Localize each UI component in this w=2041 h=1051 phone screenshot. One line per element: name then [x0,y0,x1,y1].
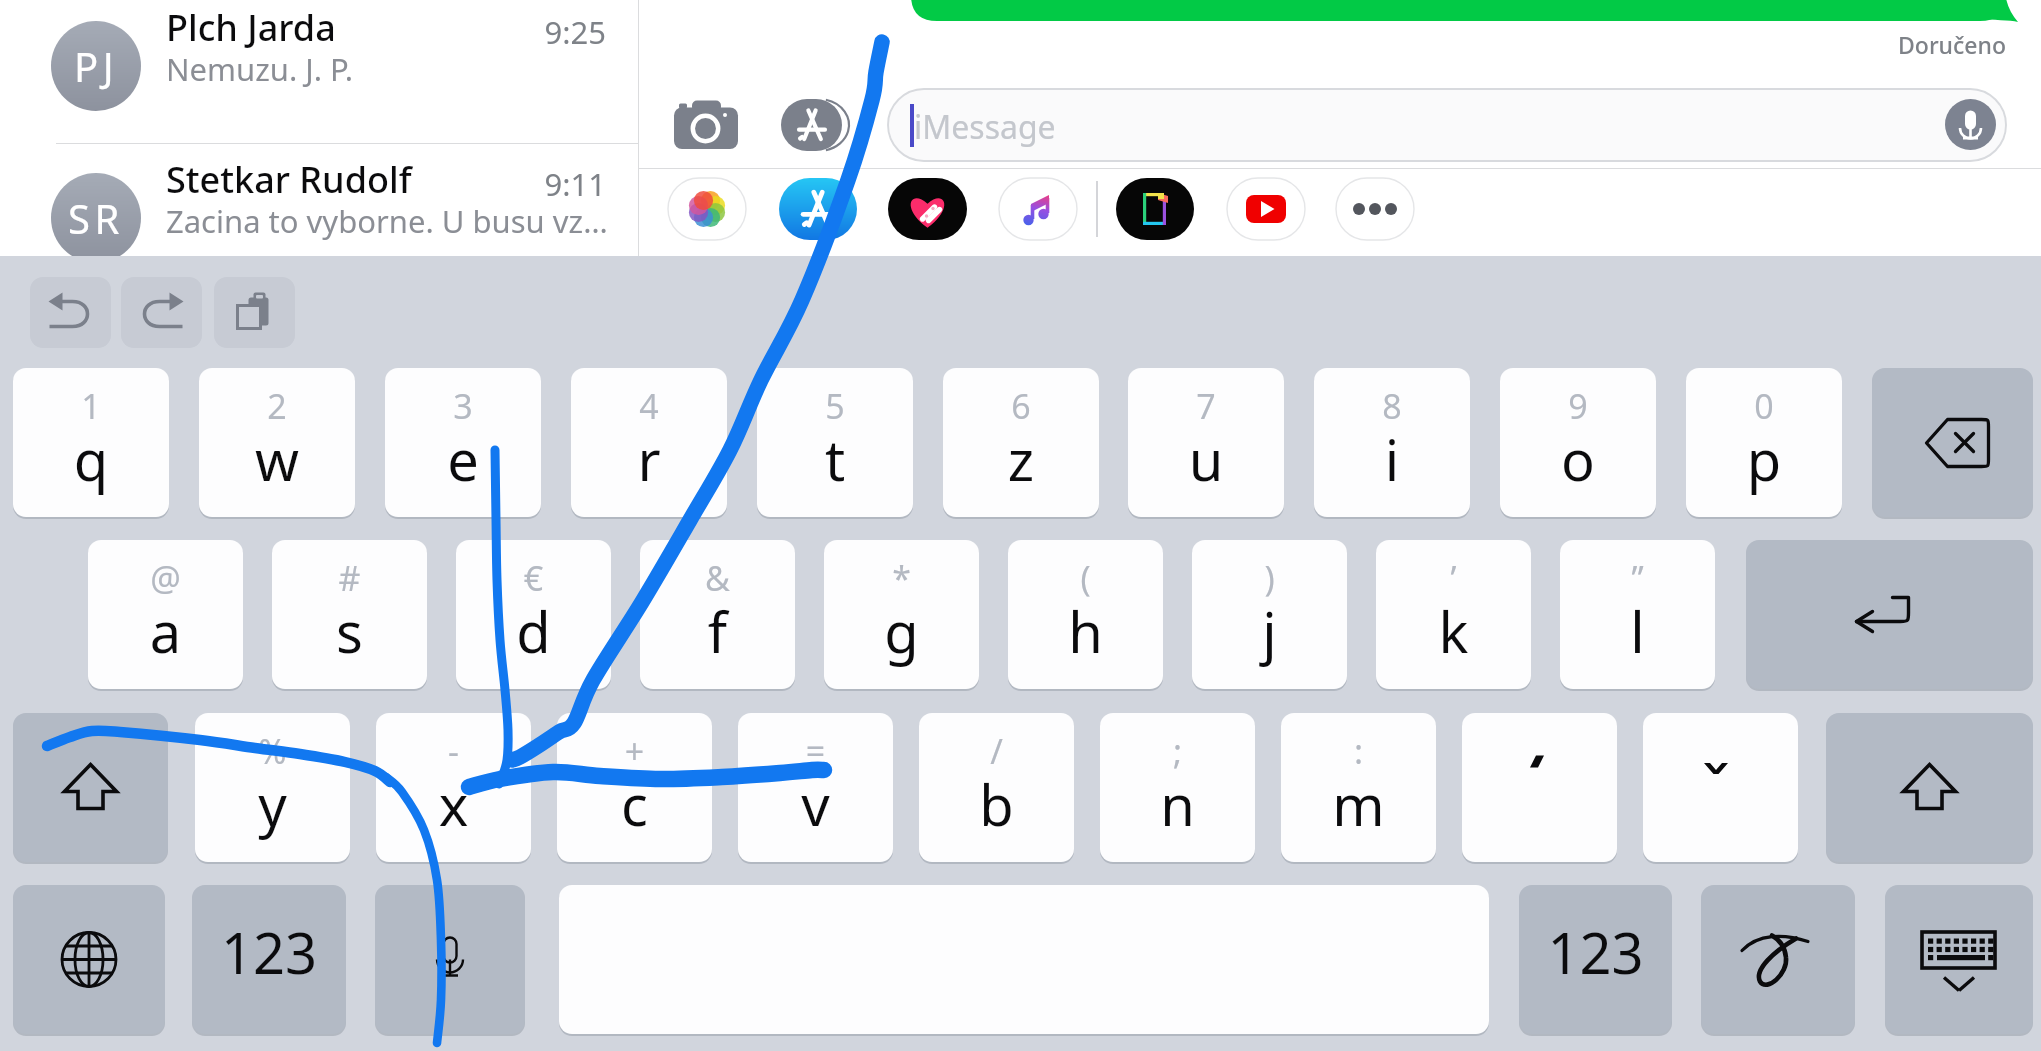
button[interactable]: Caron accent [1643,713,1798,862]
button[interactable]: d [456,540,611,689]
button[interactable]: App Store [779,178,857,240]
staticText: k [1376,593,1531,689]
button[interactable]: i [1314,368,1470,517]
staticText: b [919,766,1074,862]
button[interactable]: e [385,368,541,517]
staticText: l [1560,593,1715,689]
button[interactable]: Shift [1826,713,2033,862]
button[interactable]: m [1281,713,1436,862]
staticText: o [1500,421,1656,517]
staticText: * [824,555,979,599]
staticText: m [1281,766,1436,862]
button[interactable]: q [13,368,169,517]
button[interactable]: Take photo [674,100,738,149]
button[interactable]: Backspace [1872,368,2033,517]
staticText: i [1314,421,1470,517]
button[interactable]: Files [1116,178,1194,240]
staticText: r [571,421,727,517]
staticText: t [757,421,913,517]
button[interactable]: Redo [121,277,202,348]
button[interactable]: 123 [192,885,346,1034]
staticText: ’ [1376,555,1531,599]
button[interactable]: Fitness [888,178,967,240]
button[interactable]: b [919,713,1074,862]
staticText: 9:11 [430,163,606,203]
button[interactable]: v [738,713,893,862]
button[interactable]: x [376,713,531,862]
staticText: Zacina to vyborne. U busu vze… [166,200,618,242]
button[interactable]: s [272,540,427,689]
staticText: d [456,593,611,689]
button[interactable]: Hide keyboard [1885,885,2033,1034]
button[interactable]: p [1686,368,1842,517]
button[interactable]: r [571,368,727,517]
staticText: iMessage [914,105,1056,149]
button[interactable]: j [1192,540,1347,689]
staticText: v [738,766,893,862]
staticText: ) [1192,555,1347,599]
button[interactable]: w [199,368,355,517]
button[interactable]: Undo [30,277,111,348]
staticText: Plch Jarda [166,3,336,52]
staticText: x [376,766,531,862]
staticText: # [272,555,427,599]
button[interactable]: g [824,540,979,689]
button[interactable]: Acute accent [1462,713,1617,862]
staticText: Stetkar Rudolf [166,155,412,204]
button[interactable]: Return [1746,540,2033,689]
staticText: + [557,728,712,772]
button[interactable]: y [195,713,350,862]
staticText: a [88,593,243,689]
staticText: f [640,593,795,689]
staticText: q [13,421,169,517]
button[interactable]: PJ [0,0,638,152]
staticText: 1 [13,383,169,427]
button[interactable]: App Store [781,99,849,151]
button[interactable]: Paste [214,277,295,348]
button[interactable]: a [88,540,243,689]
staticText: 3 [385,383,541,427]
button[interactable]: Shift [13,713,168,862]
staticText: 6 [943,383,1099,427]
button[interactable]: YouTube [1227,178,1305,240]
staticText: 5 [757,383,913,427]
staticText: @ [88,555,243,599]
button[interactable]: Music [999,178,1077,240]
button[interactable]: f [640,540,795,689]
staticText: n [1100,766,1255,862]
button[interactable]: o [1500,368,1656,517]
staticText: e [385,421,541,517]
button[interactable]: iMessage [888,89,2006,161]
staticText: ” [1560,555,1715,599]
staticText: ; [1100,728,1255,772]
button[interactable]: z [943,368,1099,517]
staticText: / [919,728,1074,772]
staticText: 8 [1314,383,1470,427]
button[interactable]: t [757,368,913,517]
staticText: - [376,728,531,772]
staticText: p [1686,421,1842,517]
staticText: g [824,593,979,689]
button[interactable]: Switch language [13,885,165,1034]
staticText: j [1192,593,1347,689]
button[interactable]: 123 [1519,885,1672,1034]
staticText: 9 [1500,383,1656,427]
button[interactable]: Dictation [375,885,525,1034]
button[interactable]: Photos [668,178,746,240]
other: Dictation [1945,99,1996,150]
staticText: ( [1008,555,1163,599]
button[interactable]: k [1376,540,1531,689]
button[interactable]: c [557,713,712,862]
button[interactable]: l [1560,540,1715,689]
button[interactable]: Handwriting [1701,885,1855,1034]
button[interactable]: SR [0,152,638,304]
staticText: w [199,421,355,517]
button[interactable]: h [1008,540,1163,689]
staticText: SR [68,191,124,245]
staticText: & [640,555,795,599]
button[interactable]: n [1100,713,1255,862]
button[interactable]: u [1128,368,1284,517]
staticText: 9:25 [430,11,606,51]
button[interactable]: More apps [1336,178,1414,240]
